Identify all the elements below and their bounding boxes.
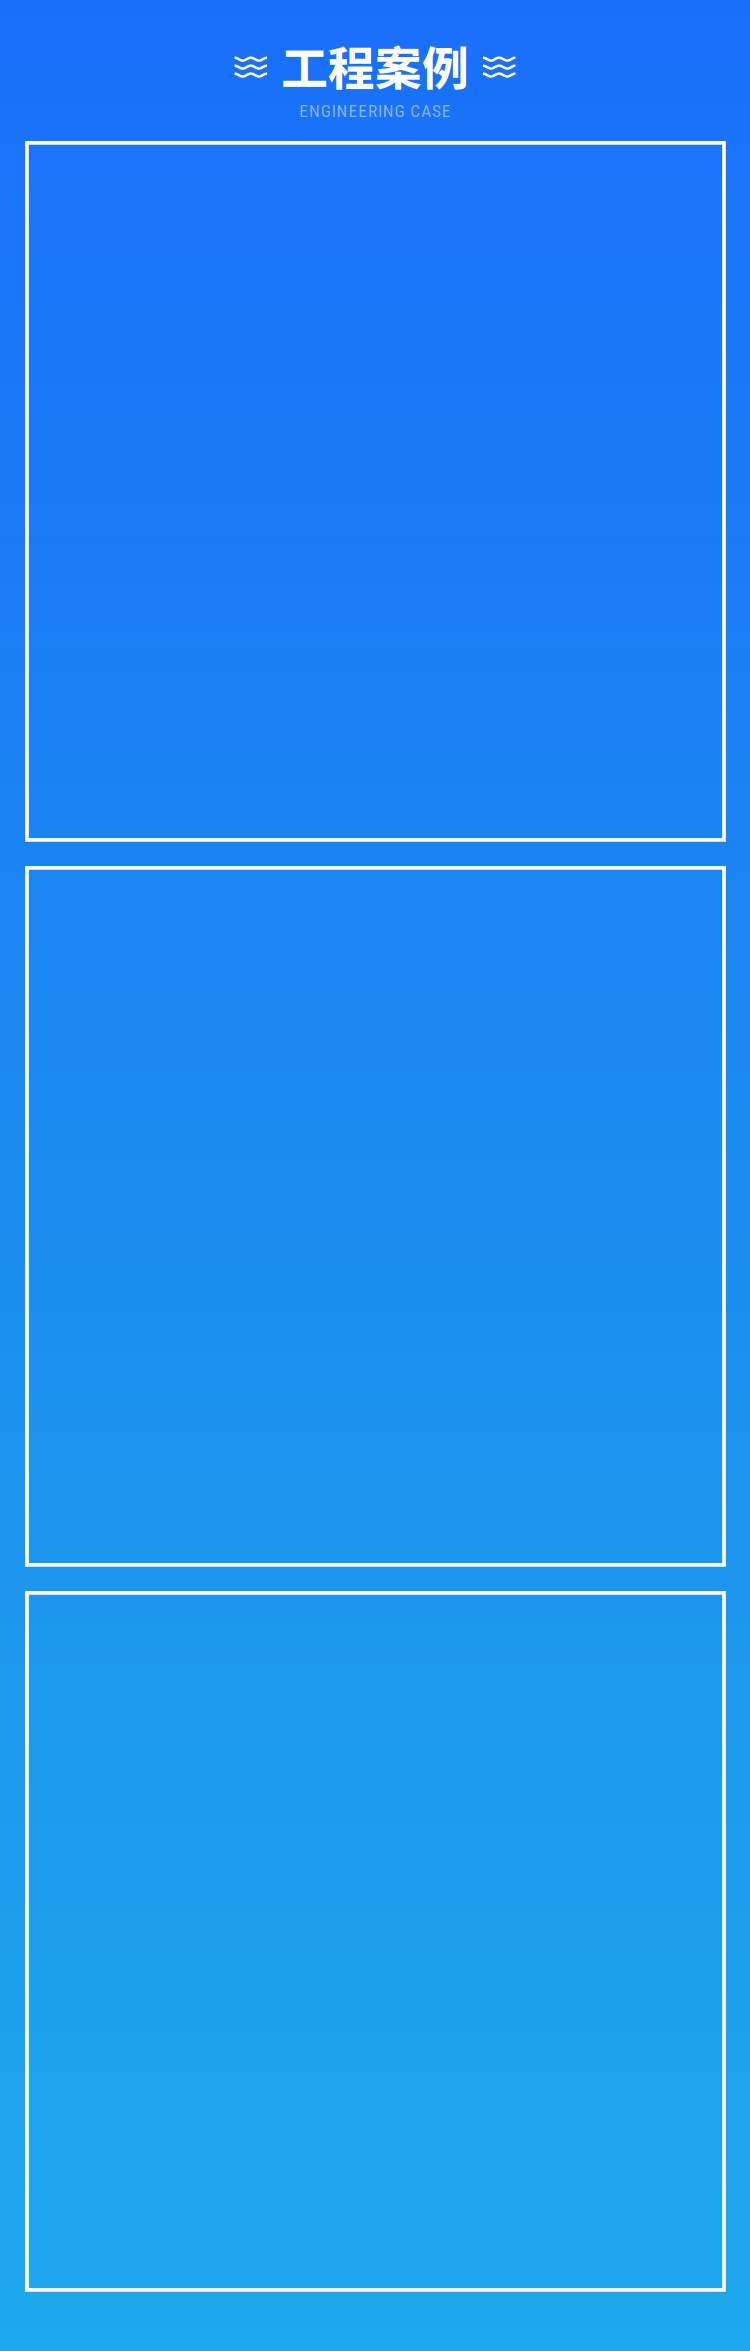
button[interactable]: Engineering case photo <box>26 1593 723 2290</box>
button[interactable]: Engineering case photo <box>26 868 723 1565</box>
staticText: 工程案例 <box>281 31 469 99</box>
staticText: ENGINEERING CASE <box>299 101 451 121</box>
button[interactable]: Engineering case photo <box>26 143 723 840</box>
